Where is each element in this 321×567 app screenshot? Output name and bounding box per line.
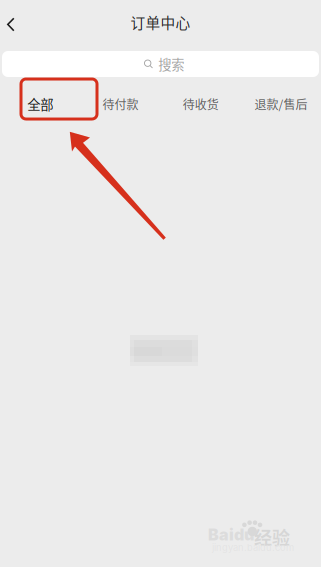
- button[interactable]: 退款/售后: [241, 82, 321, 126]
- staticText: 待付款: [102, 95, 138, 113]
- button[interactable]: 全部: [0, 82, 80, 126]
- staticText: 退款/售后: [254, 95, 307, 113]
- button[interactable]: Back: [0, 0, 40, 44]
- staticText: 待收货: [183, 95, 219, 113]
- staticText: 搜索: [158, 54, 184, 74]
- button[interactable]: 待付款: [80, 82, 160, 126]
- staticText: 订单中心: [130, 11, 190, 33]
- staticText: 经验: [254, 524, 290, 550]
- staticText: 全部: [27, 94, 53, 114]
- button[interactable]: 待收货: [160, 82, 241, 126]
- button[interactable]: 搜索: [2, 51, 319, 77]
- staticText: Baidu: [208, 525, 254, 544]
- staticText: jingyan.baidu.com: [212, 542, 294, 553]
